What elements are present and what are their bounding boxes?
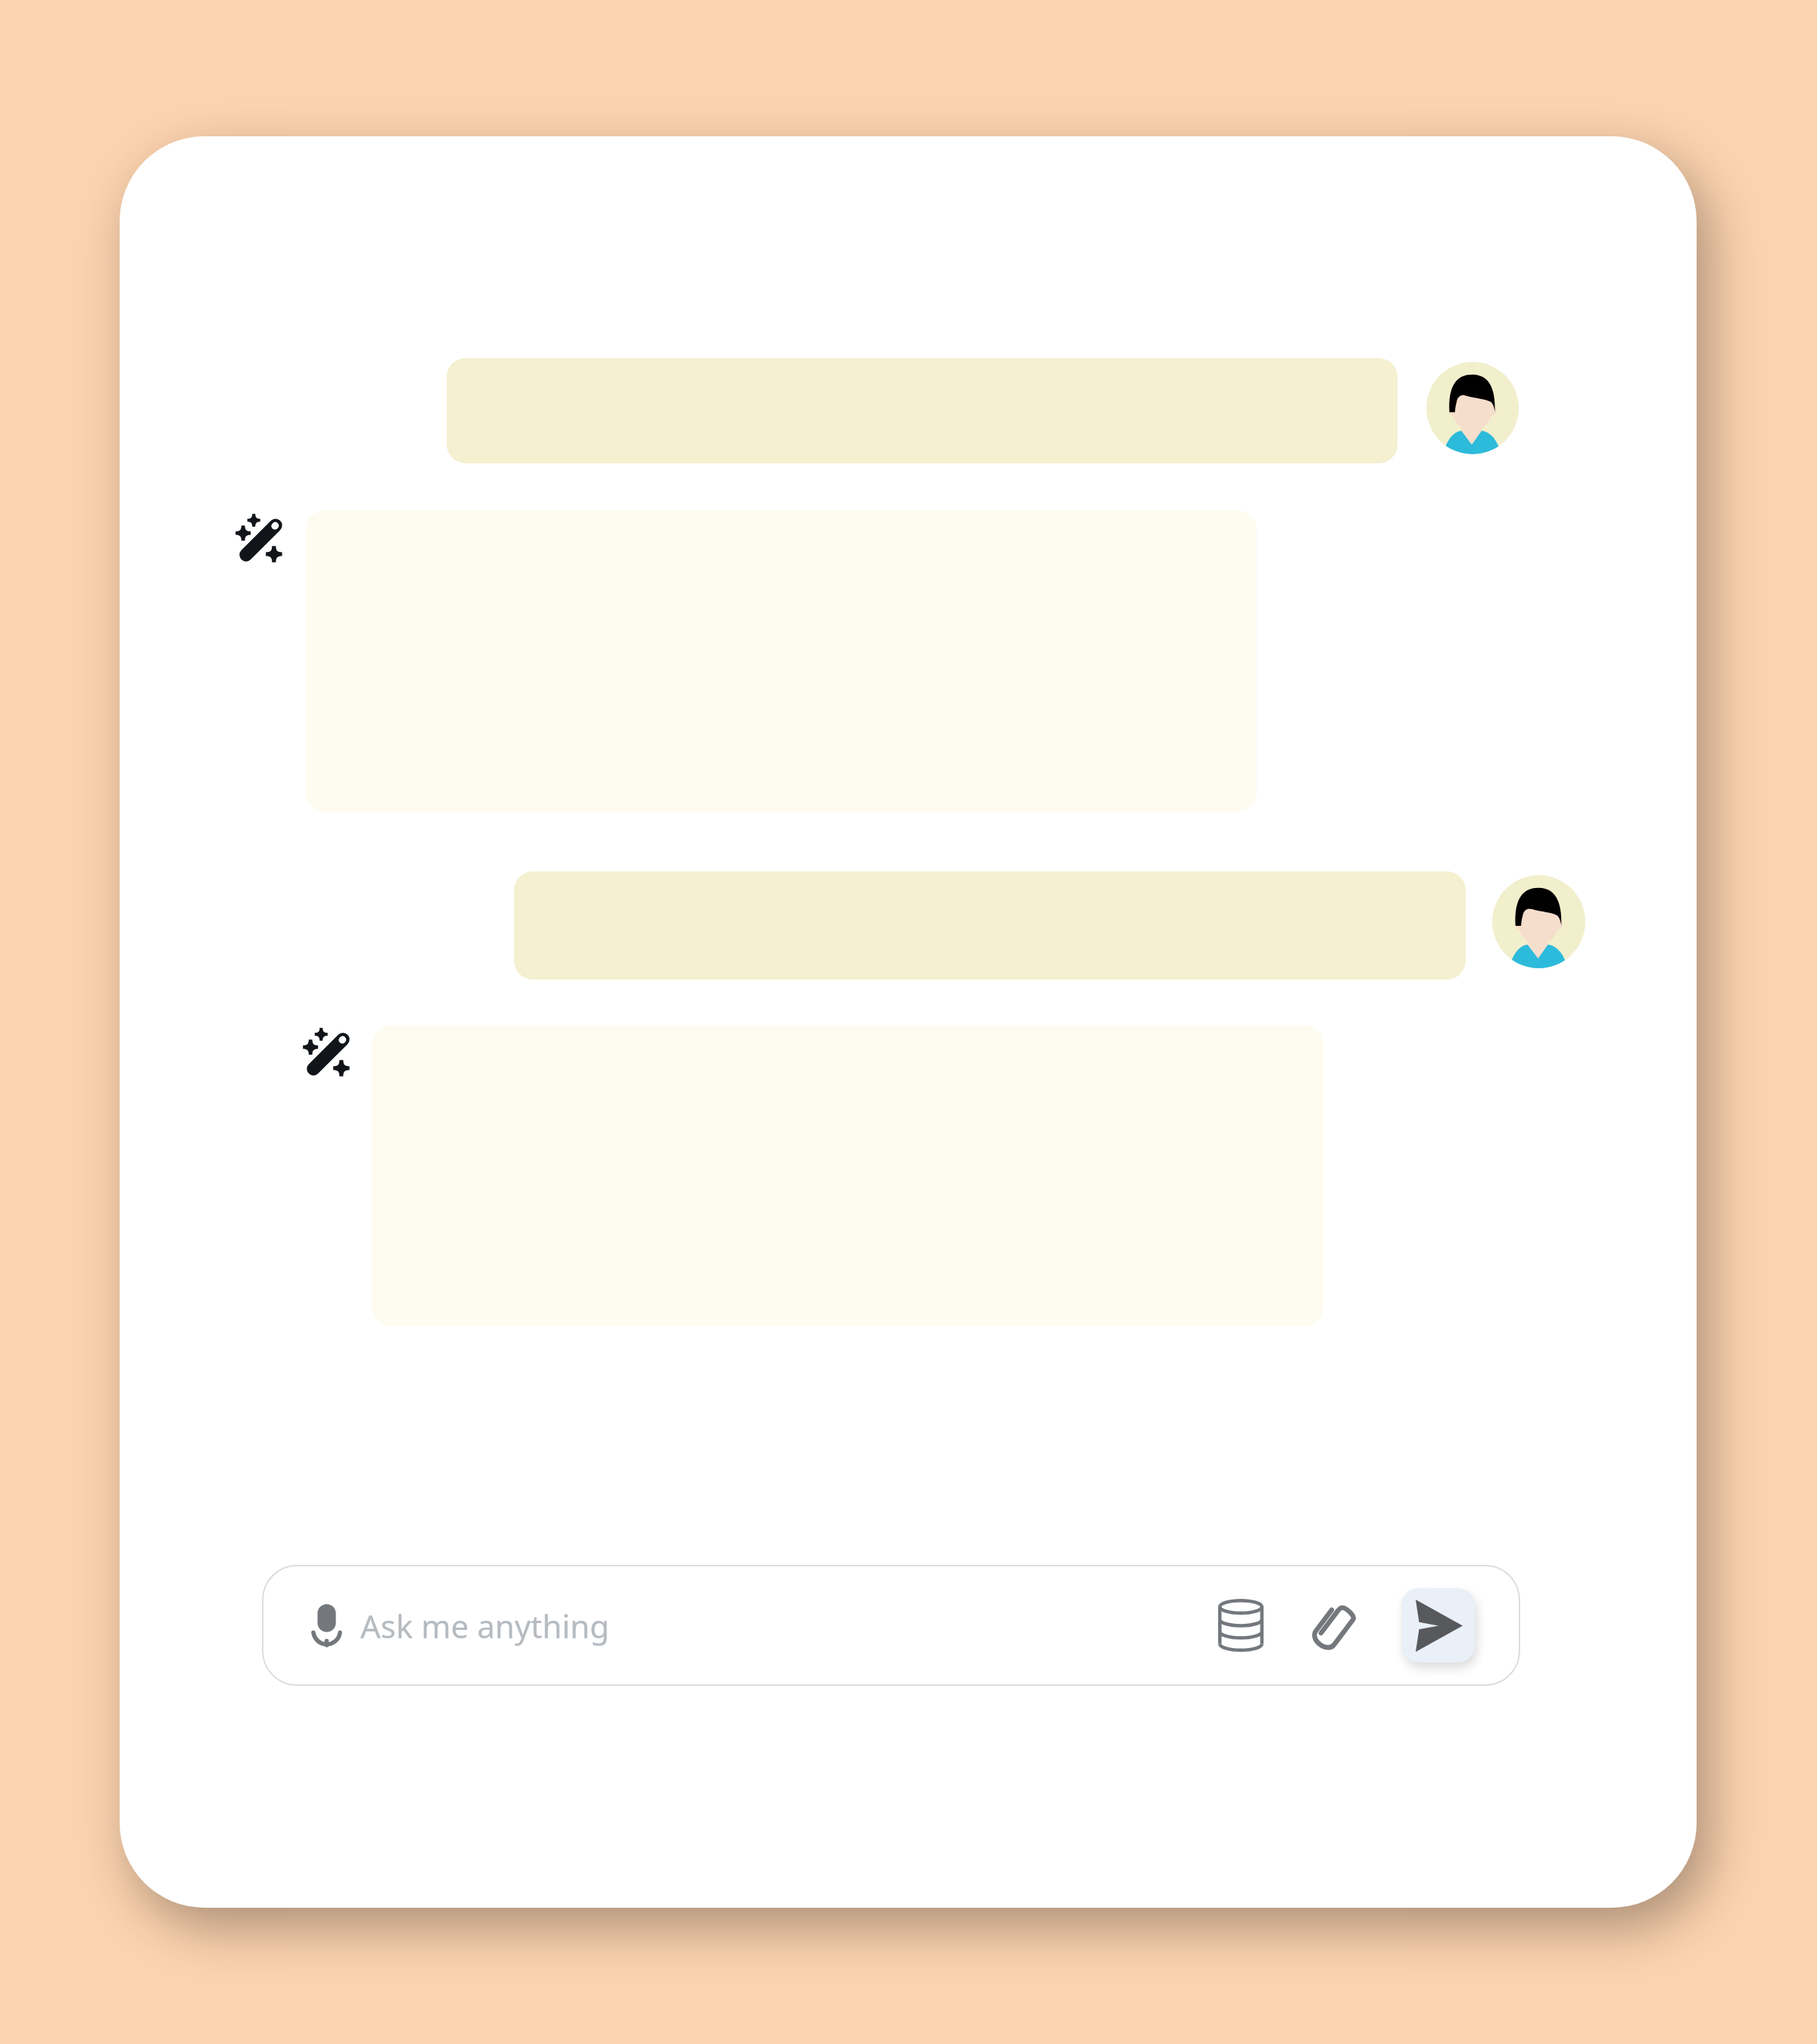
button[interactable]: AI assistant (299, 1025, 355, 1081)
button[interactable]: Data sources (1218, 1599, 1264, 1652)
button[interactable]: Attach file (1311, 1599, 1357, 1652)
staticText: Ask me anything (360, 1604, 609, 1647)
button[interactable]: User avatar (1426, 362, 1519, 454)
button[interactable]: Voice input (262, 1565, 1520, 1686)
button[interactable]: Send (1401, 1588, 1475, 1662)
button[interactable]: Voice input (311, 1604, 342, 1647)
button[interactable]: AI assistant (232, 511, 288, 567)
button[interactable] (447, 358, 1398, 463)
button[interactable] (514, 871, 1466, 980)
button[interactable]: User avatar (1492, 875, 1585, 968)
